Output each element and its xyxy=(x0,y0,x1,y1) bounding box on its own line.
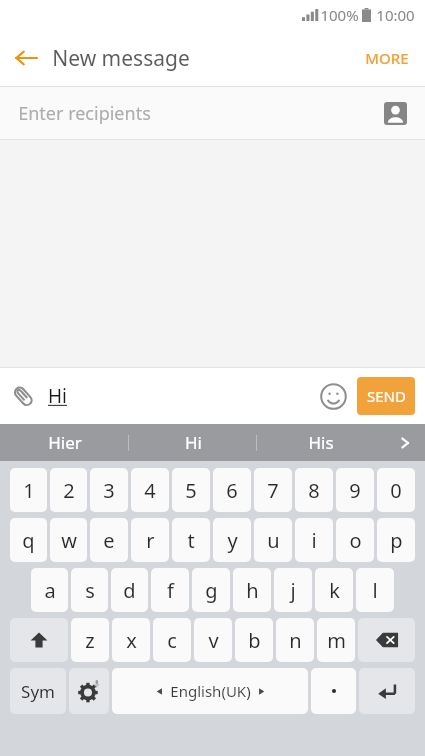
button[interactable]: g xyxy=(192,568,230,612)
button[interactable]: English(UK) xyxy=(112,668,308,714)
staticText: 5 xyxy=(185,477,197,504)
button[interactable]: MORE xyxy=(349,32,425,84)
staticText: New message xyxy=(52,44,190,73)
staticText: d xyxy=(123,577,136,604)
staticText: His xyxy=(308,431,334,454)
button[interactable] xyxy=(311,668,356,714)
button[interactable]: v xyxy=(194,618,232,662)
button[interactable]: 7 xyxy=(254,468,292,512)
staticText: 100% xyxy=(320,5,359,25)
button[interactable]: n xyxy=(276,618,314,662)
staticText: 6 xyxy=(226,477,238,504)
button[interactable]: y xyxy=(213,518,251,562)
staticText: 1 xyxy=(23,477,35,504)
button[interactable]: His xyxy=(257,424,385,461)
staticText: e xyxy=(103,527,115,554)
button[interactable]: Attach xyxy=(0,373,46,419)
staticText: g xyxy=(205,577,218,604)
staticText: w xyxy=(61,527,77,554)
staticText: 10:00 xyxy=(376,5,415,25)
button[interactable]: Settings xyxy=(69,668,109,714)
staticText: x xyxy=(126,627,137,654)
staticText: 2 xyxy=(63,477,75,504)
button[interactable]: z xyxy=(71,618,109,662)
staticText: n xyxy=(289,627,302,654)
button[interactable]: Hier xyxy=(0,424,129,461)
staticText: Hier xyxy=(48,431,82,454)
button[interactable]: f xyxy=(151,568,189,612)
staticText: r xyxy=(146,527,155,554)
button[interactable]: 5 xyxy=(172,468,210,512)
staticText: 3 xyxy=(103,477,115,504)
staticText: p xyxy=(390,527,403,554)
staticText: b xyxy=(248,627,261,654)
staticText: s xyxy=(85,577,95,604)
staticText: 9 xyxy=(349,477,361,504)
staticText: q xyxy=(22,527,35,554)
staticText: o xyxy=(349,527,362,554)
staticText: j xyxy=(290,577,296,604)
button[interactable]: e xyxy=(90,518,128,562)
button[interactable]: Emoji xyxy=(311,374,355,418)
button[interactable]: o xyxy=(336,518,374,562)
staticText: k xyxy=(329,577,340,604)
button[interactable]: Add contact xyxy=(373,91,417,135)
button[interactable]: a xyxy=(31,568,68,612)
button[interactable]: 8 xyxy=(295,468,333,512)
staticText: c xyxy=(167,627,177,654)
button[interactable]: b xyxy=(235,618,273,662)
staticText: m xyxy=(327,627,346,654)
button[interactable]: d xyxy=(111,568,148,612)
button[interactable]: 4 xyxy=(131,468,169,512)
staticText: MORE xyxy=(365,48,409,68)
staticText: t xyxy=(187,527,195,554)
button[interactable]: t xyxy=(172,518,210,562)
staticText: English(UK) xyxy=(170,681,251,701)
staticText: 8 xyxy=(308,477,320,504)
button[interactable]: SEND xyxy=(357,377,415,415)
button[interactable]: k xyxy=(315,568,353,612)
button[interactable]: j xyxy=(274,568,312,612)
staticText: u xyxy=(267,527,280,554)
button[interactable]: 3 xyxy=(90,468,128,512)
staticText: SEND xyxy=(367,386,406,406)
button[interactable]: h xyxy=(233,568,271,612)
staticText: Hi xyxy=(48,383,67,409)
button[interactable]: r xyxy=(131,518,169,562)
staticText: Hi xyxy=(185,431,202,454)
button[interactable]: Sym xyxy=(10,668,66,714)
button[interactable]: Enter recipients xyxy=(0,87,425,139)
staticText: h xyxy=(246,577,259,604)
button[interactable]: c xyxy=(153,618,191,662)
button[interactable]: s xyxy=(71,568,108,612)
button[interactable]: More suggestions xyxy=(385,424,425,461)
staticText: Sym xyxy=(21,680,55,703)
button[interactable]: Shift xyxy=(10,618,68,662)
button[interactable]: Hi xyxy=(129,424,257,461)
button[interactable]: Hi xyxy=(46,373,69,419)
staticText: 7 xyxy=(267,477,279,504)
button[interactable]: l xyxy=(356,568,394,612)
button[interactable]: 2 xyxy=(50,468,87,512)
staticText: a xyxy=(44,577,56,604)
staticText: l xyxy=(372,577,378,604)
button[interactable]: p xyxy=(377,518,415,562)
button[interactable]: x xyxy=(112,618,150,662)
button[interactable]: q xyxy=(10,518,47,562)
button[interactable]: 9 xyxy=(336,468,374,512)
staticText: i xyxy=(311,527,317,554)
button[interactable]: i xyxy=(295,518,333,562)
button[interactable]: Backspace xyxy=(358,618,415,662)
button[interactable]: m xyxy=(317,618,355,662)
button[interactable]: w xyxy=(50,518,87,562)
button[interactable]: 0 xyxy=(377,468,415,512)
staticText: 0 xyxy=(390,477,402,504)
button[interactable]: 6 xyxy=(213,468,251,512)
staticText: y xyxy=(227,527,238,554)
button[interactable]: 1 xyxy=(10,468,47,512)
staticText: 4 xyxy=(144,477,156,504)
staticText: f xyxy=(167,577,174,604)
button[interactable]: Back xyxy=(0,32,52,84)
button[interactable]: Enter xyxy=(359,668,415,714)
button[interactable]: u xyxy=(254,518,292,562)
